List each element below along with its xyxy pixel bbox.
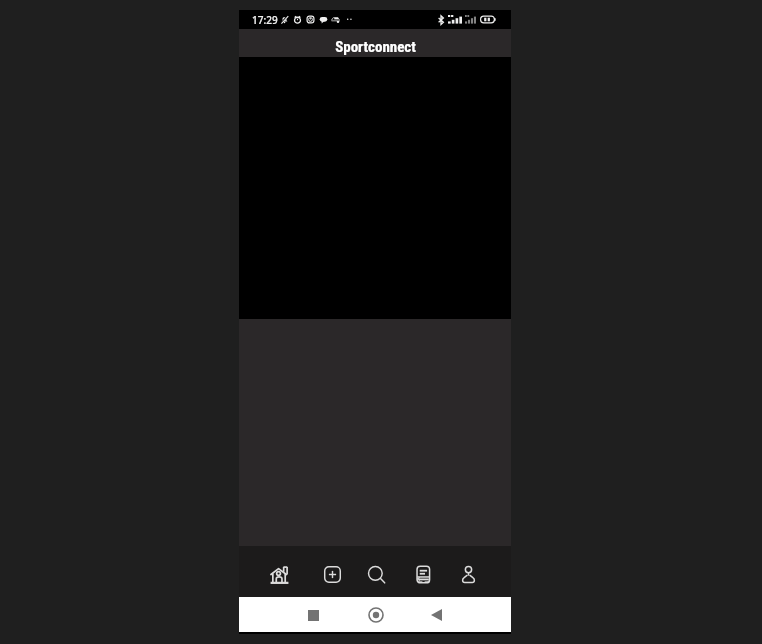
button[interactable]: Add: [309, 552, 355, 596]
staticText: Sportconnect: [335, 38, 416, 56]
button[interactable]: Back: [419, 598, 453, 632]
button[interactable]: Home: [256, 552, 302, 596]
button[interactable]: Feed: [400, 552, 446, 596]
button[interactable]: Profile: [445, 552, 491, 596]
button[interactable]: Home: [359, 598, 393, 632]
button[interactable]: Search: [353, 552, 399, 596]
button[interactable]: Recents: [296, 598, 330, 632]
staticText: 17:29: [252, 13, 278, 27]
